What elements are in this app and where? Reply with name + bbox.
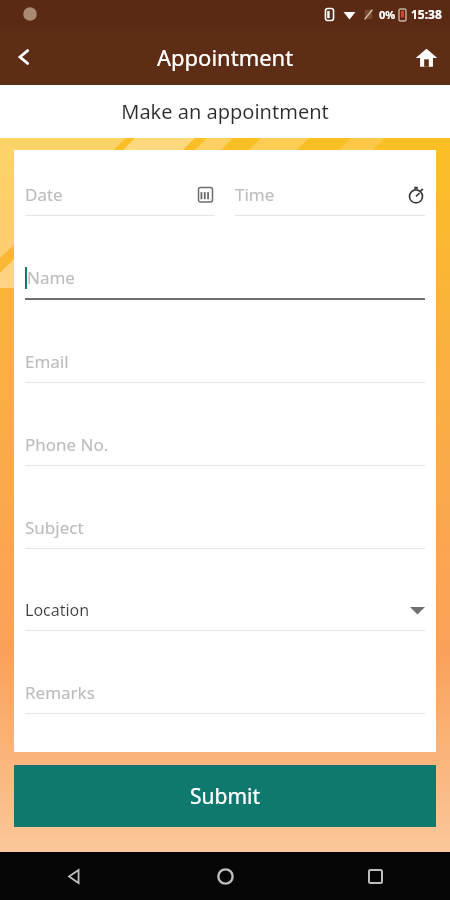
staticText: 15:38: [411, 6, 442, 22]
other: Pick date: [198, 186, 213, 203]
staticText: Email: [25, 350, 69, 373]
staticText: Submit: [190, 782, 261, 811]
button[interactable]: Recent apps: [300, 852, 450, 900]
button[interactable]: Name: [25, 266, 425, 289]
staticText: Phone No.: [25, 433, 109, 456]
staticText: Location: [25, 599, 410, 621]
staticText: Time: [235, 183, 407, 206]
staticText: Name: [27, 266, 75, 289]
button[interactable]: Back: [0, 852, 150, 900]
button[interactable]: Email: [25, 350, 425, 373]
staticText: Remarks: [25, 681, 95, 704]
button[interactable]: Time: [235, 183, 425, 206]
button[interactable]: Phone No.: [25, 433, 425, 456]
button[interactable]: Home: [150, 852, 300, 900]
button[interactable]: Submit: [14, 765, 436, 827]
staticText: 0%: [379, 7, 396, 22]
staticText: Subject: [25, 516, 84, 539]
button[interactable]: Location: [25, 599, 425, 621]
button[interactable]: Subject: [25, 516, 425, 539]
staticText: Make an appointment: [121, 98, 329, 125]
button[interactable]: Remarks: [25, 681, 425, 704]
button[interactable]: Home: [402, 33, 450, 81]
button[interactable]: Back: [0, 33, 48, 81]
button[interactable]: Date: [25, 183, 215, 206]
staticText: Appointment: [157, 42, 294, 72]
other: Pick time: [407, 186, 425, 204]
staticText: Date: [25, 183, 198, 206]
